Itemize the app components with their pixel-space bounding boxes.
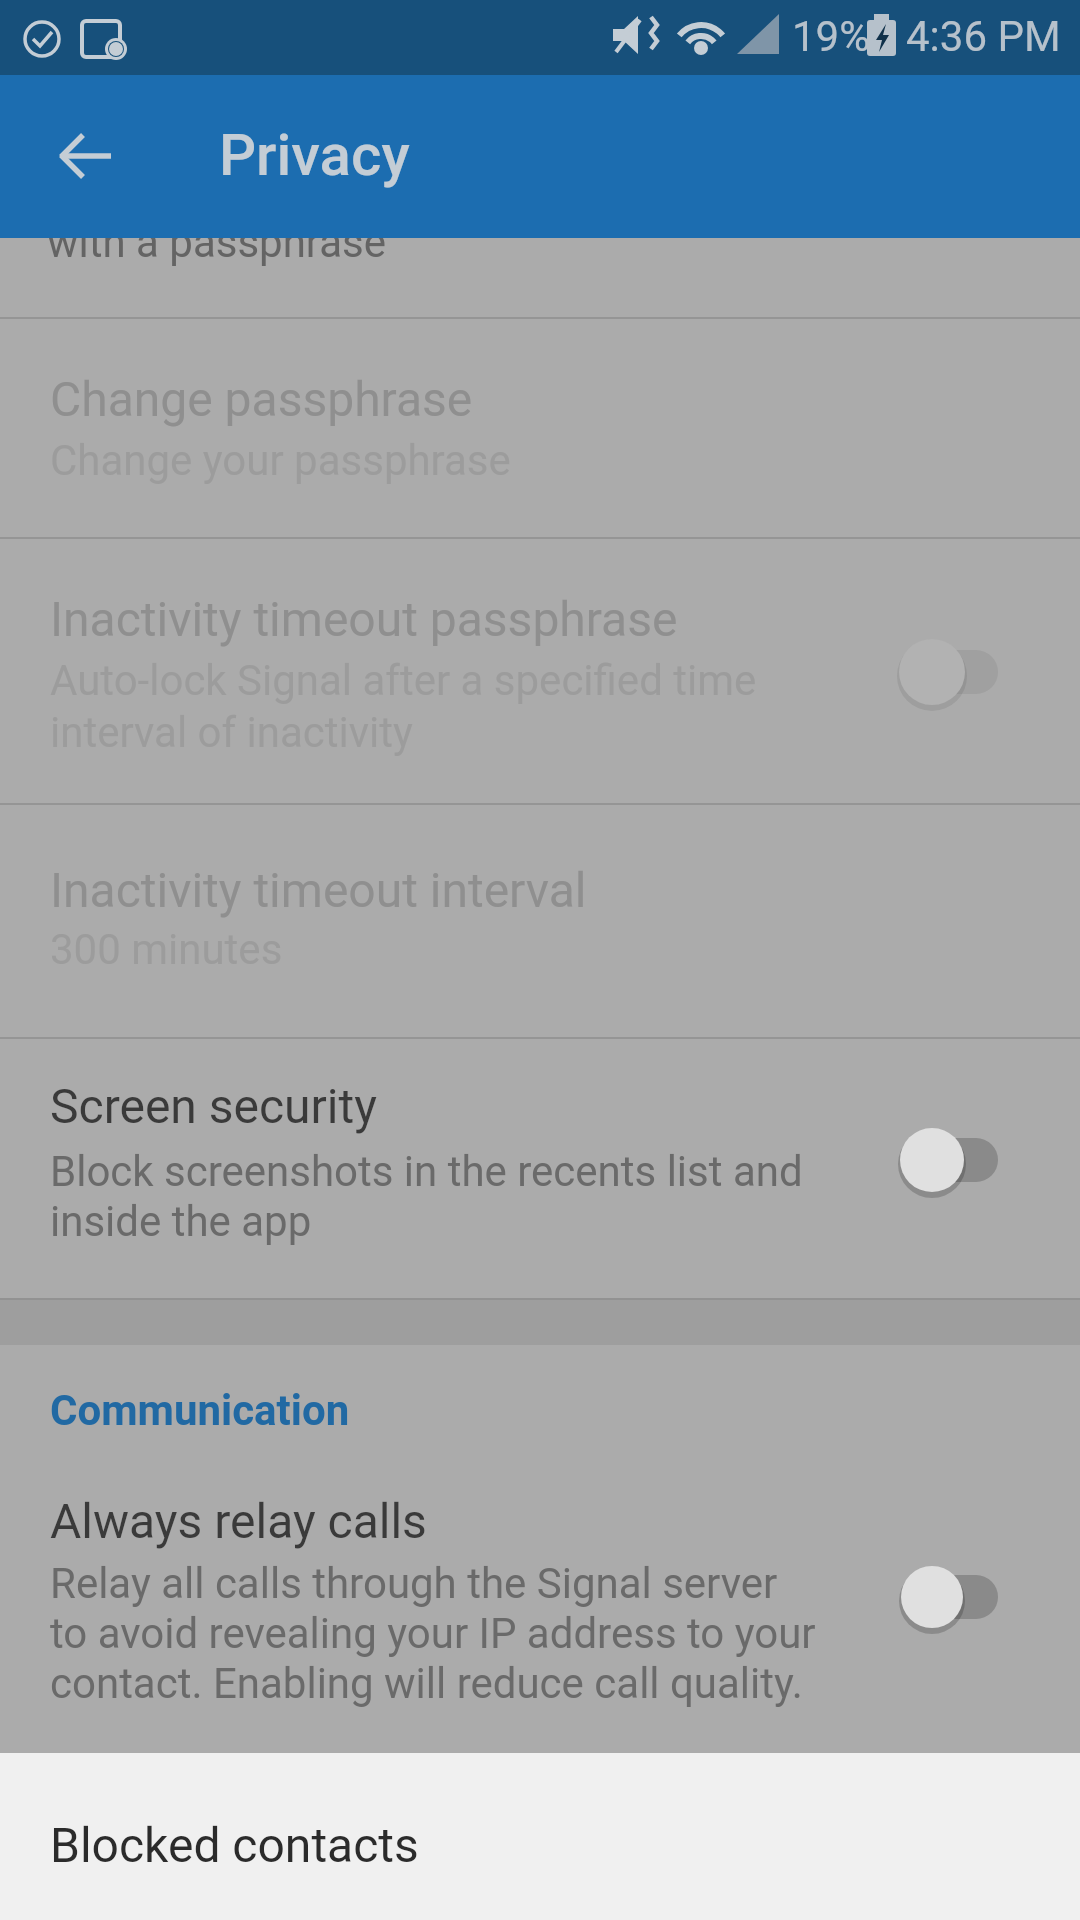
staticText: with a passphrase [47,218,387,267]
button[interactable] [0,1465,1080,1753]
staticText: to avoid revealing your IP address to yo… [50,1609,816,1658]
staticText: Always relay calls [50,1493,427,1549]
staticText: Privacy [219,121,410,189]
staticText: Inactivity timeout interval [50,862,587,918]
staticText: contact. Enabling will reduce call quali… [50,1659,803,1708]
staticText: Change passphrase [50,371,473,427]
staticText: Block screenshots in the recents list an… [50,1147,803,1196]
button[interactable] [30,103,138,211]
button[interactable] [0,1037,1080,1298]
staticText: Communication [50,1386,350,1435]
staticText: Auto-lock Signal after a specified time [50,656,757,705]
staticText: Inactivity timeout passphrase [50,591,678,647]
staticText: interval of inactivity [50,708,413,757]
staticText: 4:36 PM [906,12,1061,61]
staticText: Screen security [50,1078,377,1134]
button[interactable] [0,803,1080,1037]
staticText: inside the app [50,1197,312,1246]
staticText: Relay all calls through the Signal serve… [50,1559,778,1608]
button[interactable] [0,317,1080,537]
button[interactable] [0,1345,1080,1465]
button[interactable] [0,537,1080,803]
staticText: Blocked contacts [50,1817,419,1873]
button[interactable] [0,241,1080,317]
staticText: Change your passphrase [50,436,511,485]
staticText: 19% [792,12,870,61]
button[interactable] [0,1753,1080,1920]
staticText: 300 minutes [50,925,283,974]
